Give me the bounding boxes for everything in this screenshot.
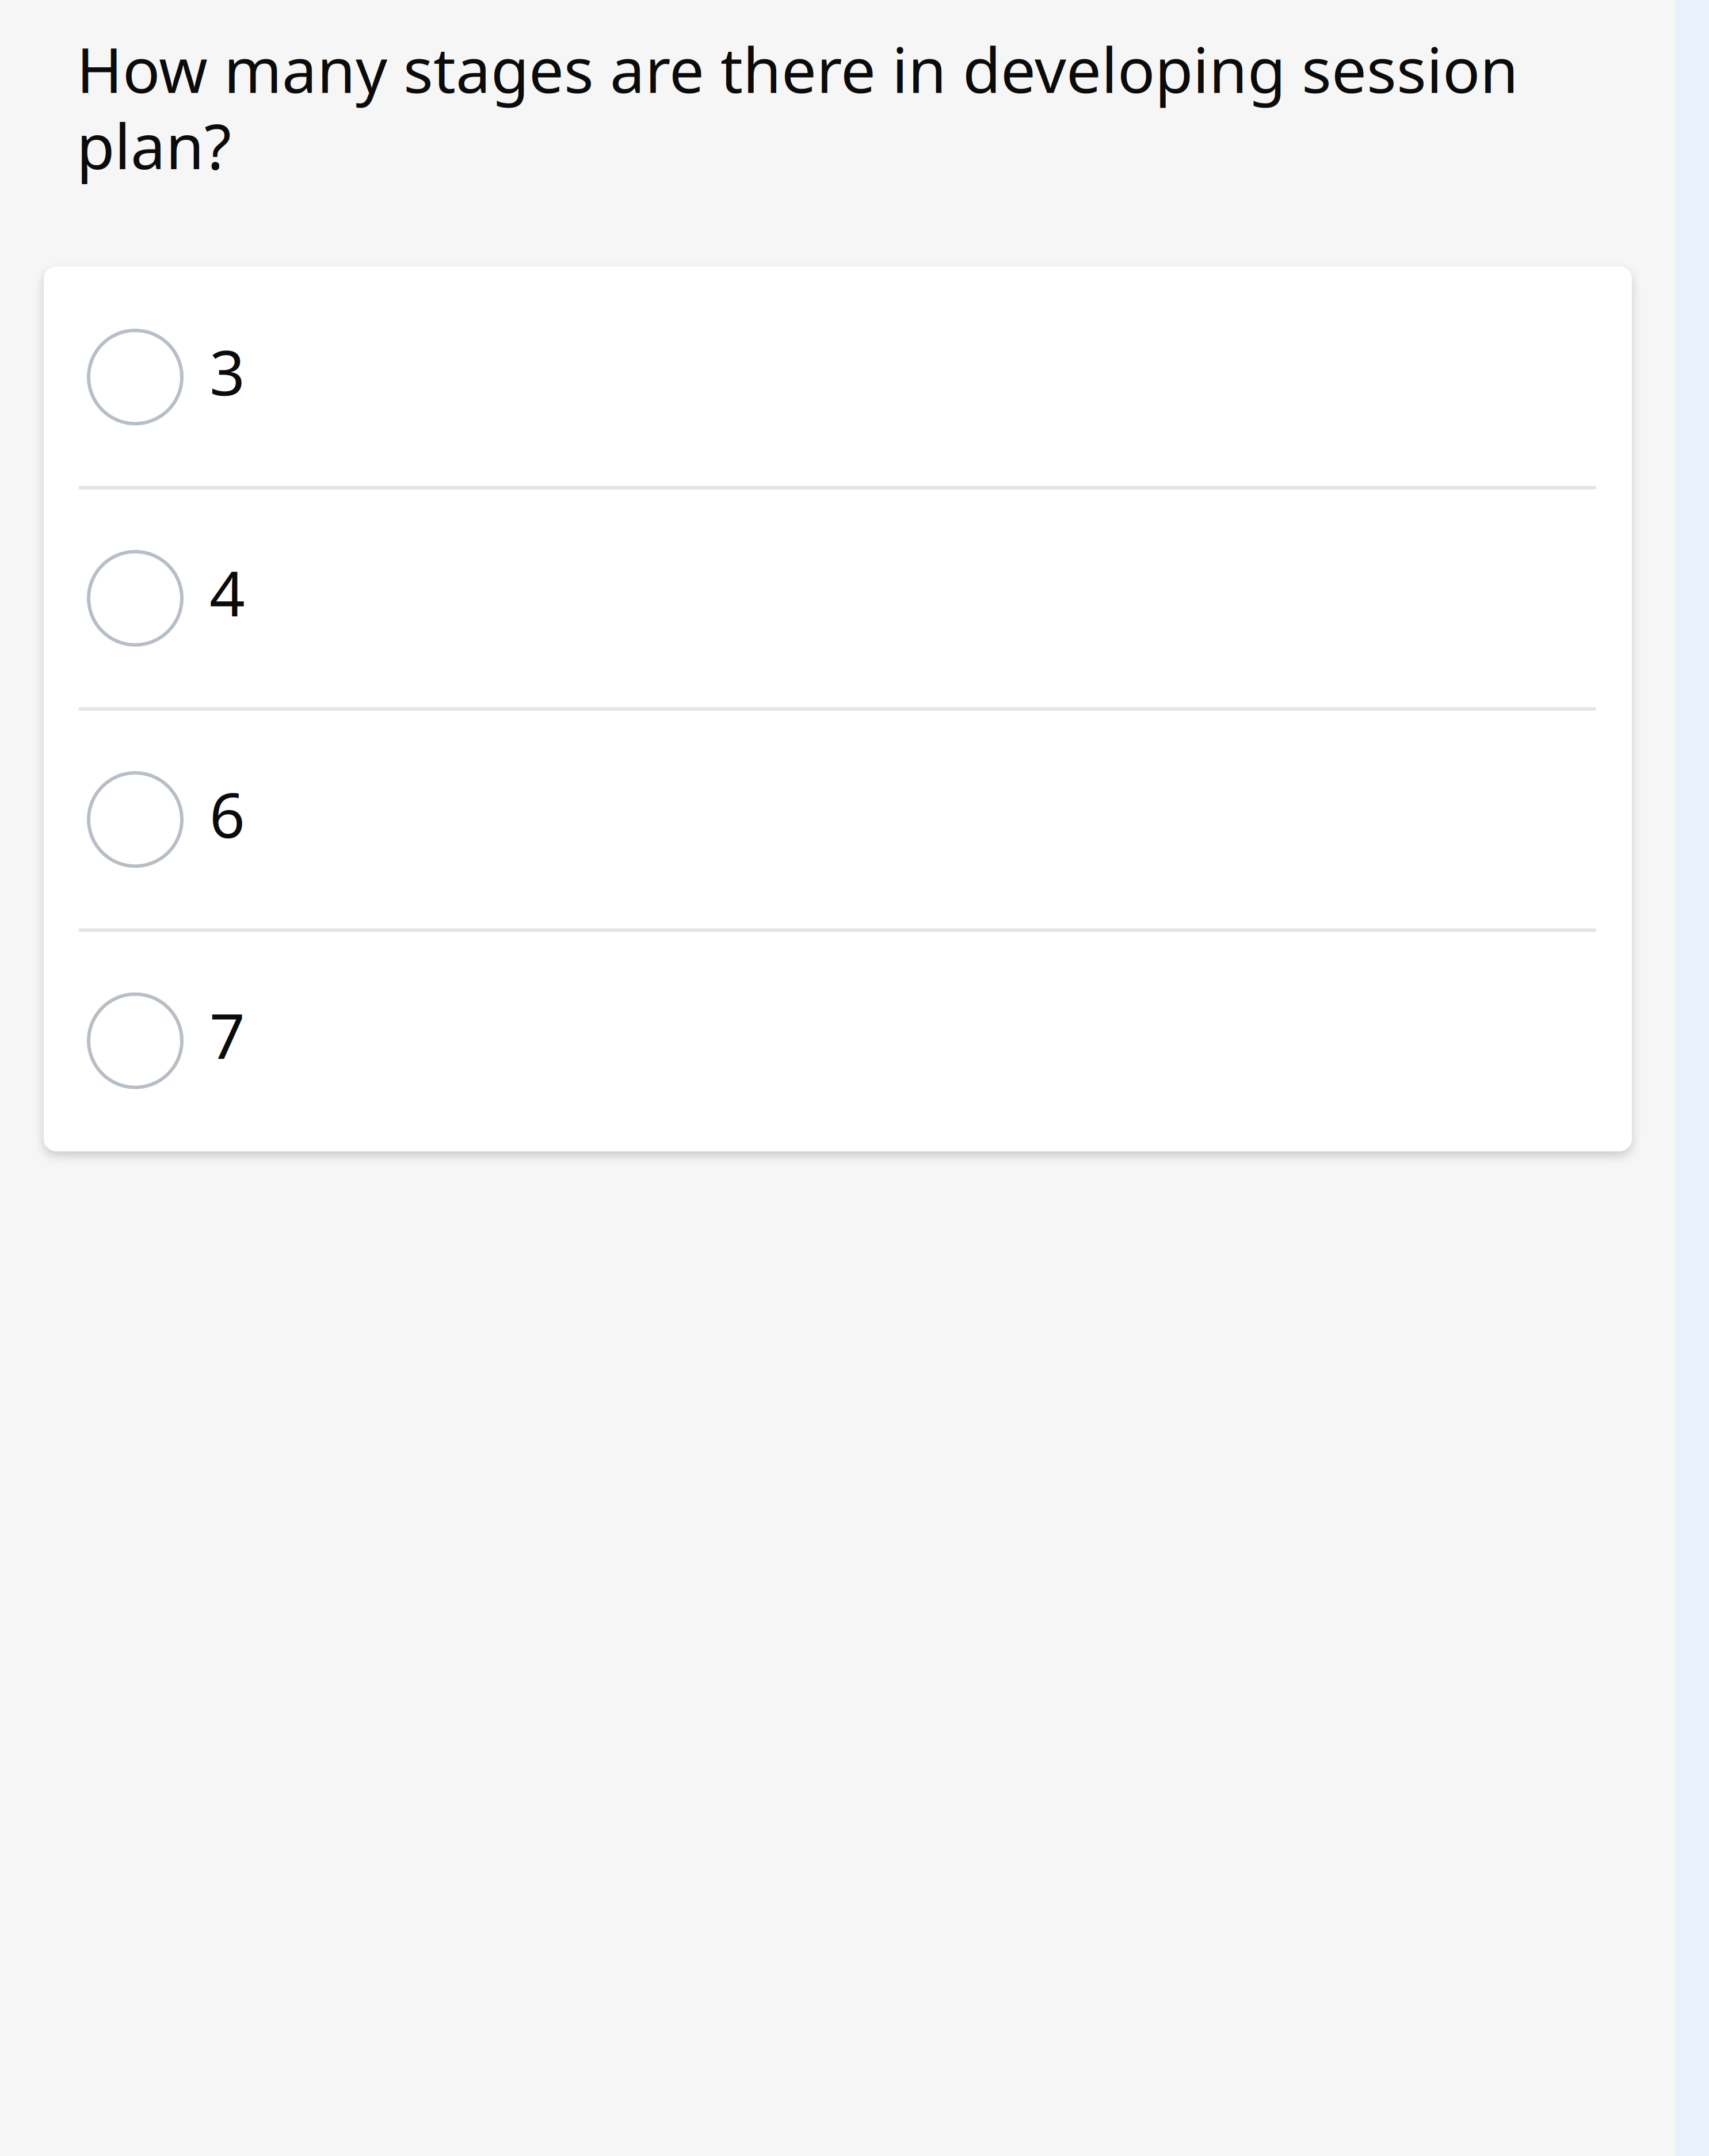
button[interactable]: 3: [44, 266, 1632, 488]
staticText: 6: [209, 772, 245, 855]
staticText: How many stages are there in developing …: [77, 28, 1519, 186]
button[interactable]: 6: [44, 709, 1632, 930]
button[interactable]: 4: [44, 488, 1632, 709]
staticText: 7: [209, 994, 245, 1076]
button[interactable]: 7: [44, 930, 1632, 1151]
staticText: 4: [209, 551, 245, 634]
staticText: 3: [209, 330, 245, 412]
